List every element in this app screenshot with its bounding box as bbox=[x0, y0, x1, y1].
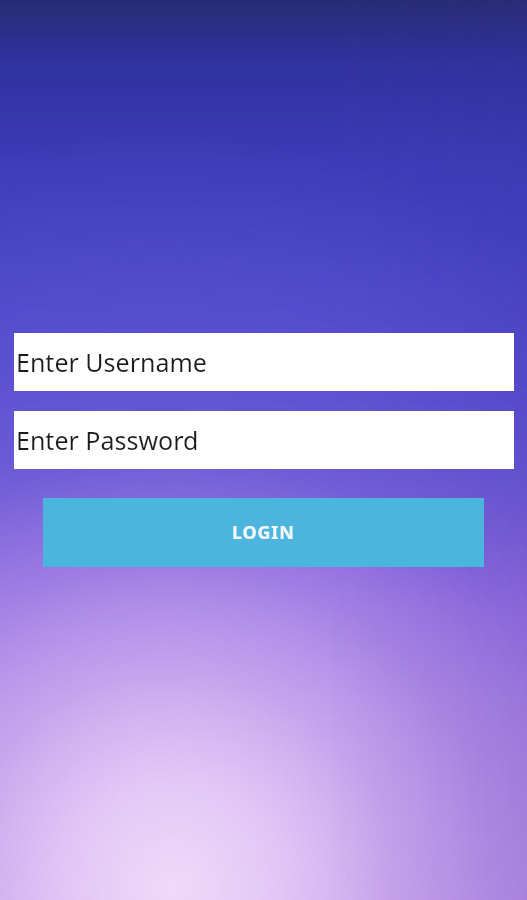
button[interactable]: Enter Password bbox=[14, 411, 514, 469]
staticText: Enter Password bbox=[16, 423, 199, 457]
staticText: Enter Username bbox=[16, 345, 207, 379]
button[interactable]: Enter Username bbox=[14, 333, 514, 391]
button[interactable]: LOGIN bbox=[43, 498, 484, 567]
staticText: LOGIN bbox=[232, 520, 295, 545]
